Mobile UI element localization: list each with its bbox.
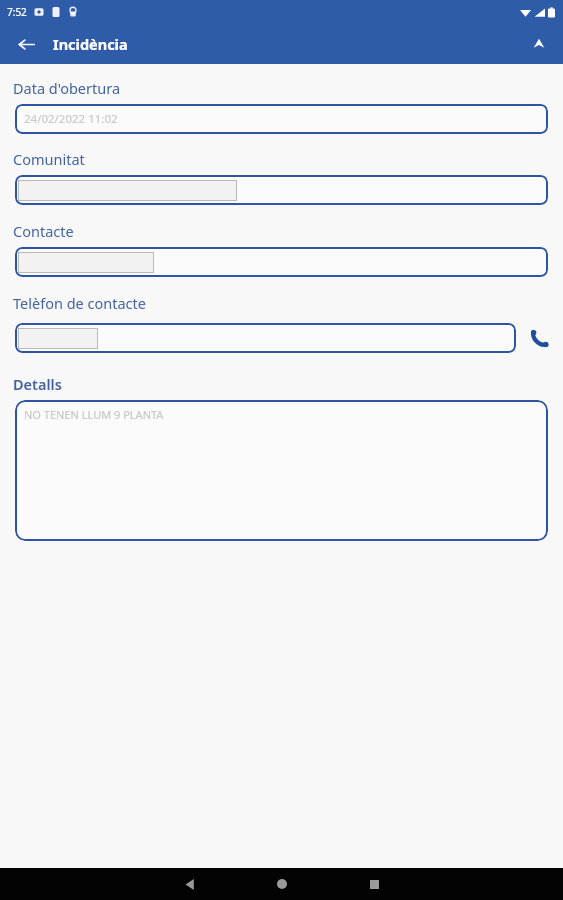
button[interactable] xyxy=(15,323,516,353)
button[interactable] xyxy=(15,247,548,277)
button[interactable] xyxy=(15,175,548,205)
staticText: Contacte xyxy=(13,221,74,241)
staticText: Comunitat xyxy=(13,149,85,169)
button[interactable]: 24/02/2022 11:02 xyxy=(15,104,548,134)
staticText: Telèfon de contacte xyxy=(13,293,146,313)
button[interactable]: Back xyxy=(144,868,236,900)
staticText: 7:52 xyxy=(7,5,27,19)
button[interactable]: Recent apps xyxy=(328,868,420,900)
button[interactable]: Home xyxy=(236,868,328,900)
button[interactable]: Back xyxy=(10,28,42,60)
button[interactable]: Send xyxy=(523,28,555,60)
staticText: Incidència xyxy=(53,34,128,54)
staticText: Data d'obertura xyxy=(13,78,121,98)
staticText: NO TENEN LLUM 9 PLANTA xyxy=(24,407,164,422)
button[interactable]: Call contact xyxy=(516,319,563,357)
button[interactable]: NO TENEN LLUM 9 PLANTA xyxy=(15,400,548,541)
staticText: 24/02/2022 11:02 xyxy=(24,111,118,127)
staticText: Detalls xyxy=(13,374,62,394)
